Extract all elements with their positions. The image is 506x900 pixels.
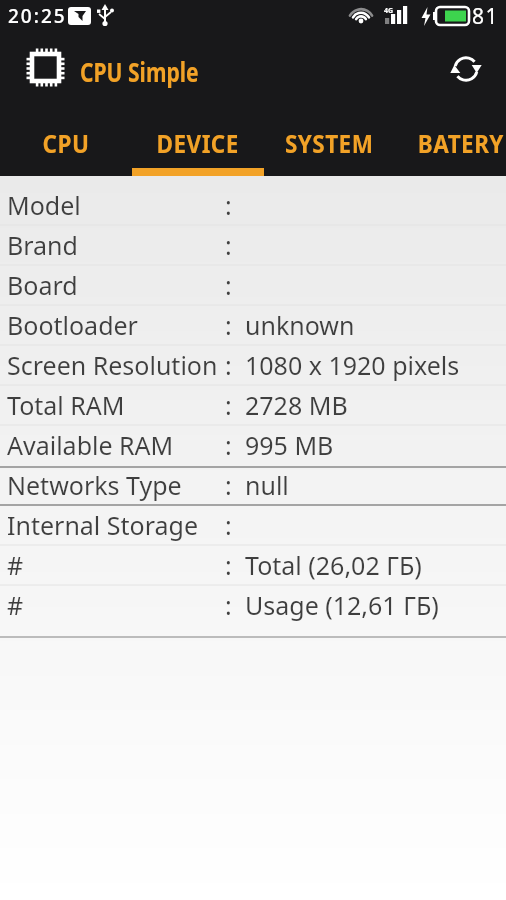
button[interactable]: SYSTEM: [263, 110, 395, 176]
staticText: Total RAM: [7, 388, 125, 422]
button[interactable]: Internal Storage: [0, 505, 506, 545]
staticText: Bootloader: [7, 308, 138, 342]
button[interactable]: Screen Resolution: [0, 345, 506, 385]
staticText: #: [7, 548, 24, 582]
staticText: CPU: [43, 126, 89, 160]
button[interactable]: Total RAM: [0, 385, 506, 425]
staticText: :: [225, 388, 232, 422]
staticText: 2728 MB: [245, 388, 348, 422]
button[interactable]: Available RAM: [0, 425, 506, 465]
staticText: SYSTEM: [285, 126, 374, 160]
staticText: unknown: [245, 308, 355, 342]
staticText: :: [225, 548, 232, 582]
button[interactable]: Model: [0, 185, 506, 225]
button[interactable]: [442, 45, 490, 93]
staticText: :: [225, 348, 232, 382]
staticText: 4G: [384, 6, 394, 16]
staticText: :: [225, 188, 232, 222]
staticText: Screen Resolution: [7, 348, 218, 382]
staticText: 81: [472, 2, 500, 31]
staticText: 1080 x 1920 pixels: [245, 348, 460, 382]
button[interactable]: Bootloader: [0, 305, 506, 345]
staticText: Usage (12,61 ГБ): [245, 588, 439, 622]
staticText: :: [225, 308, 232, 342]
button[interactable]: DEVICE: [132, 110, 264, 176]
staticText: BATERY: [418, 126, 504, 160]
staticText: #: [7, 588, 24, 622]
staticText: 995 MB: [245, 428, 334, 462]
button[interactable]: BATERY: [395, 110, 506, 176]
button[interactable]: CPU: [0, 110, 132, 176]
button[interactable]: Networks Type: [0, 465, 506, 505]
staticText: :: [225, 468, 232, 502]
staticText: :: [225, 508, 232, 542]
staticText: :: [225, 588, 232, 622]
button[interactable]: #: [0, 585, 506, 625]
button[interactable]: Brand: [0, 225, 506, 265]
staticText: Board: [7, 268, 78, 302]
staticText: :: [225, 268, 232, 302]
button[interactable]: Board: [0, 265, 506, 305]
staticText: Total (26,02 ГБ): [245, 548, 422, 582]
button[interactable]: #: [0, 545, 506, 585]
staticText: CPU Simple: [80, 54, 199, 89]
staticText: :: [225, 228, 232, 262]
staticText: Model: [7, 188, 81, 222]
staticText: DEVICE: [157, 126, 239, 160]
staticText: 20:25: [8, 3, 67, 29]
staticText: Internal Storage: [7, 508, 199, 542]
staticText: null: [245, 468, 289, 502]
staticText: Brand: [7, 228, 78, 262]
staticText: Networks Type: [7, 468, 182, 502]
staticText: :: [225, 428, 232, 462]
staticText: Available RAM: [7, 428, 174, 462]
